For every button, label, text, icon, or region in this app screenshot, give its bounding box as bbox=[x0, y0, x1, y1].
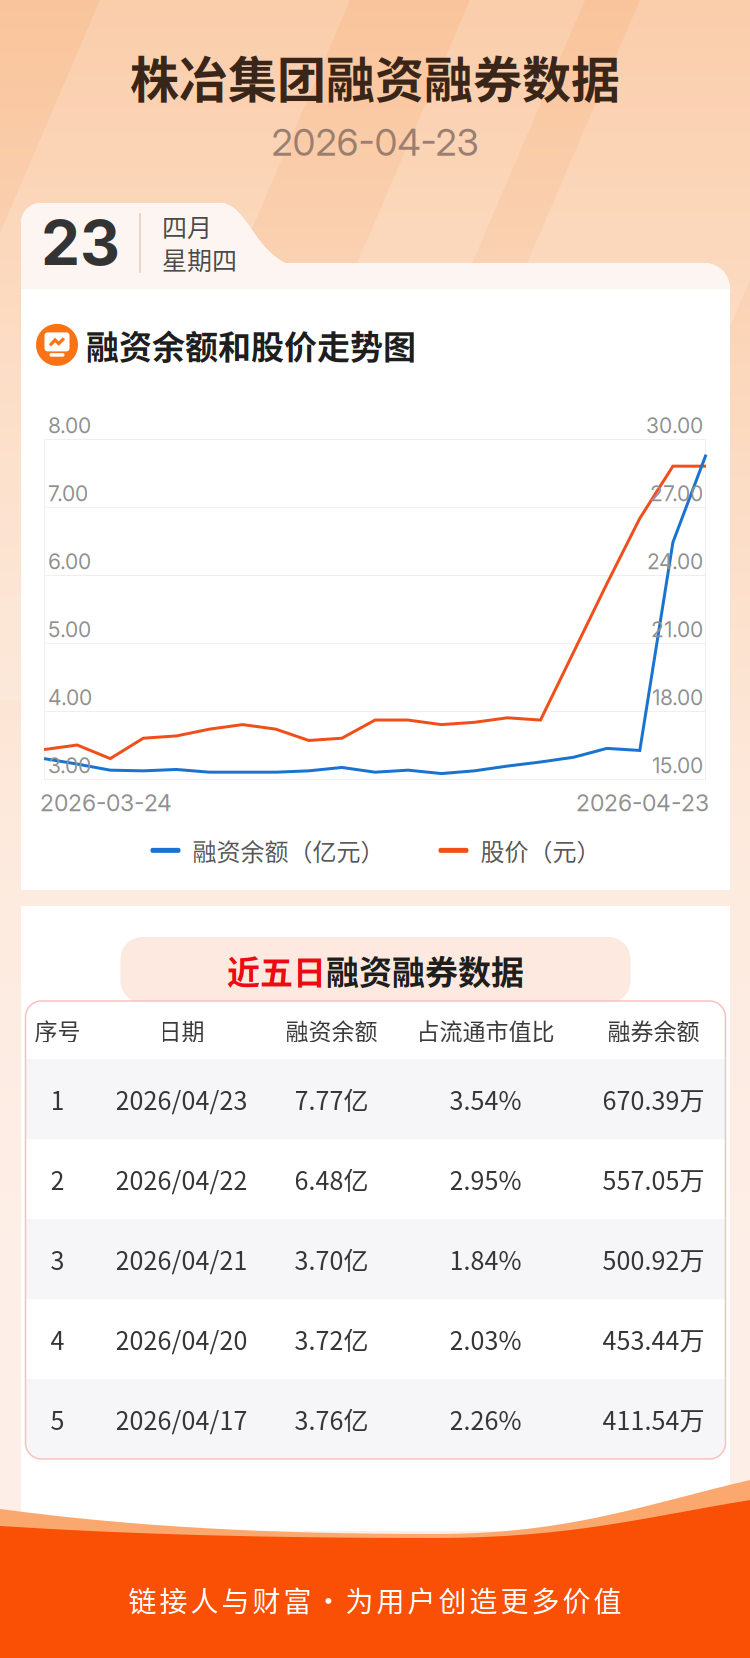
staticText: 7.00 bbox=[48, 481, 88, 506]
staticText: 2.26% bbox=[449, 1401, 521, 1437]
staticText: 5.00 bbox=[48, 617, 91, 642]
staticText: 2026/04/17 bbox=[115, 1401, 247, 1437]
staticText: 27.00 bbox=[650, 481, 703, 506]
staticText: 15.00 bbox=[652, 753, 703, 778]
staticText: 3.00 bbox=[48, 753, 91, 778]
staticText: 序号 bbox=[34, 1013, 80, 1047]
staticText: 融资余额和股价走势图 bbox=[86, 321, 416, 369]
staticText: 5 bbox=[50, 1401, 64, 1437]
staticText: 8.00 bbox=[48, 413, 91, 438]
staticText: 3.76亿 bbox=[294, 1401, 368, 1437]
staticText: 453.44万 bbox=[602, 1321, 704, 1357]
staticText: 3.70亿 bbox=[294, 1241, 368, 1277]
staticText: 1.84% bbox=[449, 1241, 521, 1277]
staticText: 7.77亿 bbox=[294, 1081, 368, 1117]
staticText: 融券余额 bbox=[607, 1013, 699, 1047]
staticText: 1 bbox=[50, 1081, 64, 1117]
staticText: 557.05万 bbox=[602, 1161, 704, 1197]
staticText: 融资余额 bbox=[285, 1013, 377, 1047]
staticText: 2026/04/21 bbox=[115, 1241, 247, 1277]
staticText: 3.72亿 bbox=[294, 1321, 368, 1357]
staticText: 30.00 bbox=[646, 413, 703, 438]
staticText: 4 bbox=[50, 1321, 64, 1357]
staticText: 4.00 bbox=[48, 685, 92, 710]
staticText: 6.00 bbox=[48, 549, 91, 574]
staticText: 2026/04/20 bbox=[115, 1321, 247, 1357]
staticText: 500.92万 bbox=[602, 1241, 704, 1277]
staticText: 2026-04-23 bbox=[576, 789, 709, 817]
staticText: 2.03% bbox=[449, 1321, 521, 1357]
staticText: 2026/04/22 bbox=[115, 1161, 247, 1197]
staticText: 链接人与财富·为用户创造更多价值 bbox=[128, 1579, 621, 1620]
staticText: 3.54% bbox=[449, 1081, 521, 1117]
staticText: 2026/04/23 bbox=[115, 1081, 247, 1117]
staticText: 2 bbox=[50, 1161, 64, 1197]
staticText: 24.00 bbox=[647, 549, 703, 574]
staticText: 23 bbox=[41, 205, 120, 280]
staticText: 411.54万 bbox=[602, 1401, 704, 1437]
staticText: 融资余额（亿元） bbox=[192, 833, 384, 868]
staticText: 星期四 bbox=[162, 241, 237, 277]
staticText: 2026-03-24 bbox=[40, 789, 172, 817]
staticText: 融资融券数据 bbox=[326, 946, 524, 994]
staticText: 近五日 bbox=[227, 946, 326, 994]
staticText: 670.39万 bbox=[602, 1081, 704, 1117]
staticText: 18.00 bbox=[652, 685, 703, 710]
staticText: 2026-04-23 bbox=[271, 120, 478, 165]
staticText: 21.00 bbox=[651, 617, 703, 642]
staticText: 3 bbox=[50, 1241, 64, 1277]
staticText: 日期 bbox=[158, 1013, 204, 1047]
staticText: 6.48亿 bbox=[294, 1161, 368, 1197]
staticText: 株冶集团融资融券数据 bbox=[130, 41, 620, 112]
staticText: 股价（元） bbox=[480, 833, 600, 868]
staticText: 2.95% bbox=[449, 1161, 521, 1197]
staticText: 四月 bbox=[162, 208, 212, 244]
staticText: 占流通市值比 bbox=[416, 1013, 554, 1047]
